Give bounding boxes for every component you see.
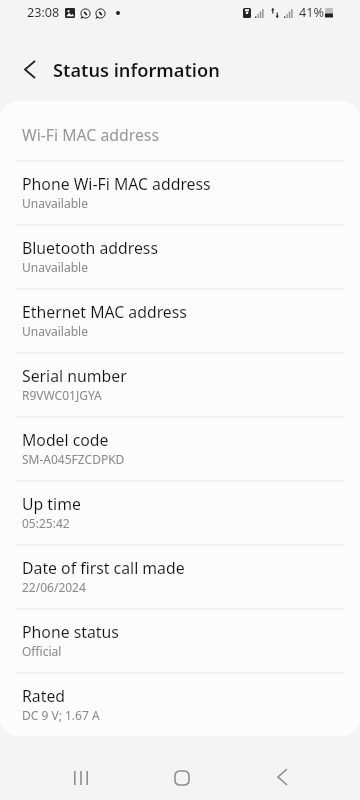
staticText: Rated bbox=[22, 685, 66, 707]
button[interactable]: Serial number bbox=[0, 353, 360, 417]
button[interactable]: Navigate up bbox=[14, 53, 46, 85]
staticText: Phone status bbox=[22, 621, 119, 643]
button[interactable]: Rated bbox=[0, 673, 360, 736]
staticText: Ethernet MAC address bbox=[22, 301, 187, 323]
button[interactable]: Model code bbox=[0, 417, 360, 481]
staticText: Serial number bbox=[22, 365, 127, 387]
button[interactable]: Date of first call made bbox=[0, 545, 360, 609]
staticText: Unavailable bbox=[22, 259, 88, 275]
staticText: Phone Wi-Fi MAC address bbox=[22, 173, 211, 195]
staticText: Unavailable bbox=[22, 195, 88, 211]
staticText: Unavailable bbox=[22, 323, 88, 339]
staticText: Model code bbox=[22, 429, 109, 451]
button[interactable]: Home bbox=[159, 755, 204, 800]
staticText: 41% bbox=[299, 4, 324, 21]
staticText: 05:25:42 bbox=[22, 515, 70, 531]
staticText: R9VWC01JGYA bbox=[22, 387, 102, 403]
button[interactable]: Bluetooth address bbox=[0, 225, 360, 289]
button[interactable]: Phone status bbox=[0, 609, 360, 673]
button[interactable]: Up time bbox=[0, 481, 360, 545]
staticText: Up time bbox=[22, 493, 81, 515]
staticText: Wi-Fi MAC address bbox=[22, 124, 159, 146]
button[interactable]: Recent apps bbox=[58, 755, 103, 800]
staticText: Official bbox=[22, 643, 62, 659]
button[interactable]: Ethernet MAC address bbox=[0, 289, 360, 353]
staticText: 22/06/2024 bbox=[22, 579, 86, 595]
button[interactable]: Back bbox=[260, 754, 305, 799]
button[interactable]: Wi-Fi MAC address bbox=[0, 101, 360, 161]
staticText: Bluetooth address bbox=[22, 237, 158, 259]
staticText: SM-A045FZCDPKD bbox=[22, 451, 125, 467]
staticText: Date of first call made bbox=[22, 557, 185, 579]
staticText: 23:08 bbox=[27, 4, 60, 21]
staticText: DC 9 V; 1.67 A bbox=[22, 707, 100, 723]
button[interactable]: Phone Wi-Fi MAC address bbox=[0, 161, 360, 225]
staticText: Status information bbox=[53, 58, 220, 83]
